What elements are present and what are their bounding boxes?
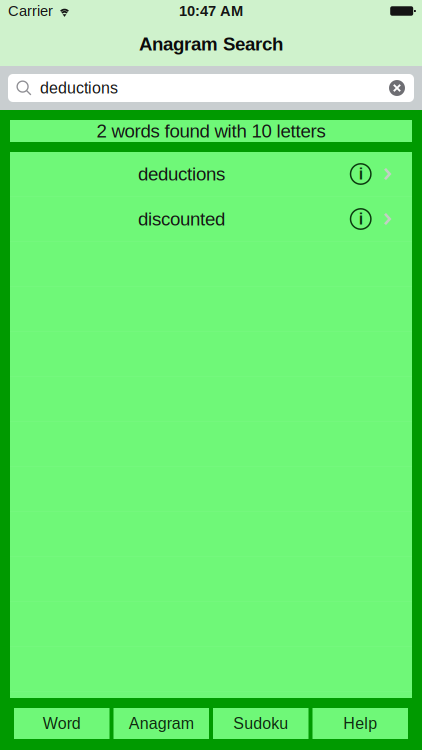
staticText: 2 words found with 10 letters [96, 121, 325, 141]
staticText: Carrier [8, 3, 53, 19]
staticText: Anagram Search [139, 34, 283, 54]
staticText: deductions [138, 164, 225, 184]
staticText: Word [43, 715, 81, 732]
button[interactable]: Word [14, 708, 109, 739]
button[interactable]: Anagram [113, 708, 209, 739]
staticText: discounted [138, 209, 225, 229]
button[interactable]: Help [312, 708, 408, 739]
staticText: Anagram [129, 715, 194, 732]
staticText: Sudoku [233, 715, 288, 732]
button[interactable]: discounted [10, 197, 412, 242]
staticText: i [359, 210, 363, 228]
staticText: deductions [40, 79, 118, 97]
staticText: 10:47 AM [179, 3, 243, 19]
staticText: Help [343, 715, 377, 732]
button[interactable]: deductions [10, 152, 412, 197]
staticText: i [359, 165, 363, 183]
button[interactable]: Sudoku [213, 708, 308, 739]
